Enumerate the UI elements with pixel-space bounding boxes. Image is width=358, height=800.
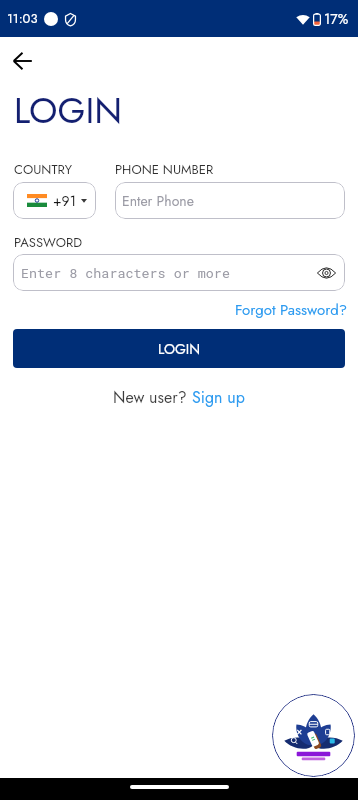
button[interactable]: Show password [314, 261, 338, 285]
button[interactable]: Enter Phone [115, 182, 345, 219]
staticText: PHONE NUMBER [115, 160, 214, 179]
button[interactable]: LOGIN [13, 329, 345, 368]
button[interactable]: Sign up [192, 386, 245, 409]
button[interactable]: Forgot Password? [235, 299, 358, 321]
staticText: PASSWORD [14, 233, 83, 252]
staticText: COUNTRY [14, 160, 73, 179]
staticText: +91 [53, 191, 76, 211]
button[interactable]: Enter 8 characters or more [13, 254, 345, 291]
staticText: 11:03 [7, 9, 38, 28]
staticText: New user? [113, 386, 192, 409]
staticText: LOGIN [158, 339, 201, 359]
button[interactable]: +91 [13, 182, 96, 219]
staticText: 17% [324, 9, 349, 29]
button[interactable]: Back [5, 44, 39, 78]
button[interactable]: ServiSwift logo [272, 694, 355, 777]
staticText: Enter 8 characters or more [21, 264, 230, 282]
staticText: LOGIN [14, 84, 123, 136]
staticText: Enter Phone [122, 191, 194, 211]
